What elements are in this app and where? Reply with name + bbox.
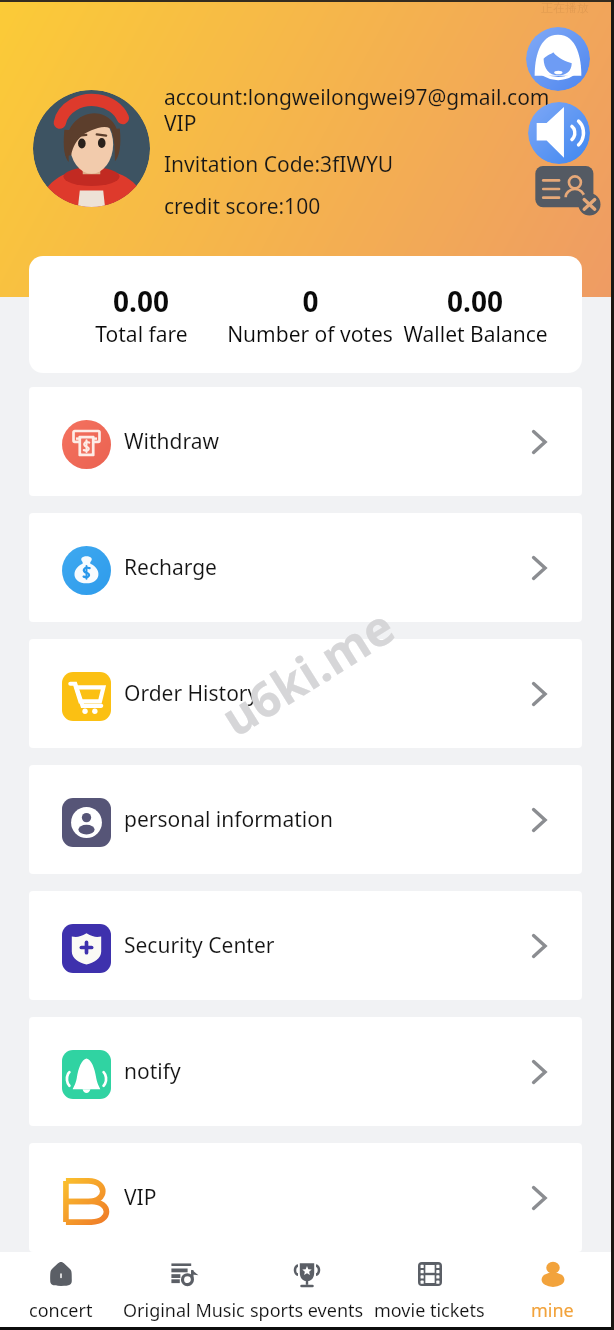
staticText: personal information [124, 805, 333, 834]
button[interactable]: movie tickets [368, 1252, 491, 1330]
staticText: notify [124, 1057, 181, 1086]
staticText: VIP [124, 1183, 157, 1212]
button[interactable]: Security Center [29, 891, 582, 1000]
button[interactable]: VIP [29, 1143, 582, 1252]
button[interactable]: mine [491, 1252, 614, 1330]
staticText: movie tickets [374, 1298, 485, 1323]
staticText: Total fare [95, 320, 188, 349]
staticText: Security Center [124, 931, 275, 960]
button[interactable]: Announcements [528, 102, 590, 164]
button[interactable]: Log out [534, 166, 600, 214]
staticText: 正在播放 [541, 0, 589, 15]
button[interactable]: Order History [29, 639, 582, 748]
staticText: Wallet Balance [403, 320, 548, 349]
button[interactable]: Withdraw [29, 387, 582, 496]
button[interactable]: Original Music [122, 1252, 245, 1330]
button[interactable]: notify [29, 1017, 582, 1126]
staticText: account:longweilongwei97@gmail.com VIP [164, 83, 556, 137]
staticText: Recharge [124, 553, 217, 582]
button[interactable]: sports events [245, 1252, 368, 1330]
staticText: 0.00 [447, 282, 503, 320]
staticText: concert [29, 1298, 93, 1323]
staticText: credit score:100 [164, 192, 321, 221]
staticText: Withdraw [124, 427, 219, 456]
button[interactable]: Customer service [526, 27, 590, 91]
staticText: 0.00 [113, 282, 169, 320]
staticText: Number of votes [227, 320, 393, 349]
button[interactable]: Recharge [29, 513, 582, 622]
staticText: mine [531, 1298, 574, 1323]
staticText: 0 [302, 282, 319, 320]
button[interactable]: concert [0, 1252, 122, 1330]
staticText: Original Music [123, 1298, 245, 1323]
staticText: sports events [250, 1298, 364, 1323]
staticText: u6ki.me [209, 593, 406, 750]
staticText: Order History [124, 679, 259, 708]
staticText: Invitation Code:3fIWYU [164, 150, 394, 179]
button[interactable]: personal information [29, 765, 582, 874]
